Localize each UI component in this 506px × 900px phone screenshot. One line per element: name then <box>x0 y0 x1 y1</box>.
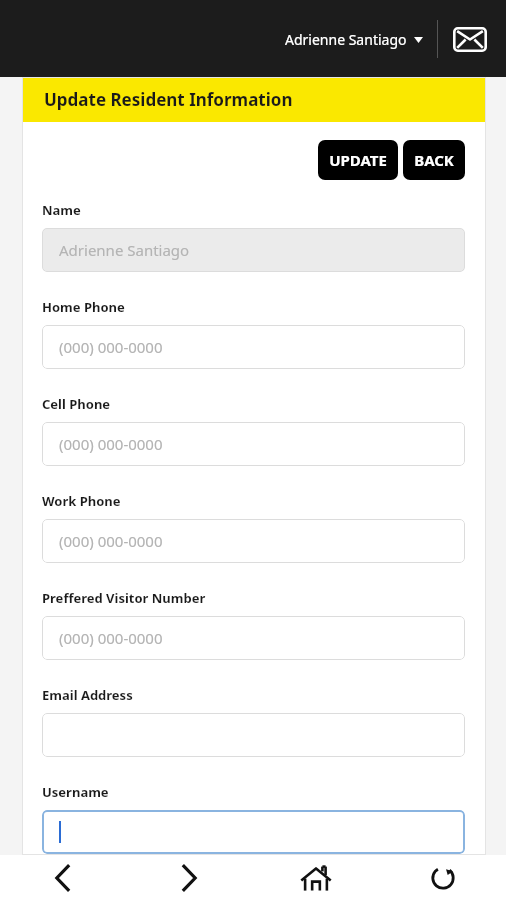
staticText: Update Resident Information <box>44 88 293 111</box>
button[interactable]: Adrienne Santiago <box>279 24 429 55</box>
staticText: Email Address <box>42 686 133 704</box>
staticText: (000) 000-0000 <box>59 434 163 454</box>
button[interactable]: (000) 000-0000 <box>42 616 465 660</box>
button[interactable]: Back <box>0 855 126 900</box>
staticText: (000) 000-0000 <box>59 337 163 357</box>
staticText: Preffered Visitor Number <box>42 589 206 607</box>
button[interactable]: Refresh <box>379 855 506 900</box>
button[interactable] <box>42 810 465 854</box>
staticText: Username <box>42 783 109 801</box>
staticText: BACK <box>414 150 454 170</box>
button[interactable]: Adrienne Santiago <box>42 228 465 272</box>
button[interactable]: (000) 000-0000 <box>42 325 465 369</box>
button[interactable] <box>42 713 465 757</box>
staticText: Cell Phone <box>42 395 111 413</box>
button[interactable]: (000) 000-0000 <box>42 422 465 466</box>
button[interactable]: Messages <box>448 17 492 61</box>
button[interactable]: BACK <box>403 140 465 180</box>
staticText: Home Phone <box>42 298 125 316</box>
staticText: Name <box>42 201 81 219</box>
button[interactable]: Home <box>252 855 379 900</box>
button[interactable]: UPDATE <box>318 140 398 180</box>
button[interactable]: Forward <box>126 855 252 900</box>
staticText: (000) 000-0000 <box>59 628 163 648</box>
staticText: Adrienne Santiago <box>285 30 407 49</box>
staticText: UPDATE <box>329 150 387 170</box>
staticText: Work Phone <box>42 492 121 510</box>
button[interactable]: (000) 000-0000 <box>42 519 465 563</box>
staticText: (000) 000-0000 <box>59 531 163 551</box>
staticText: Adrienne Santiago <box>59 240 190 260</box>
